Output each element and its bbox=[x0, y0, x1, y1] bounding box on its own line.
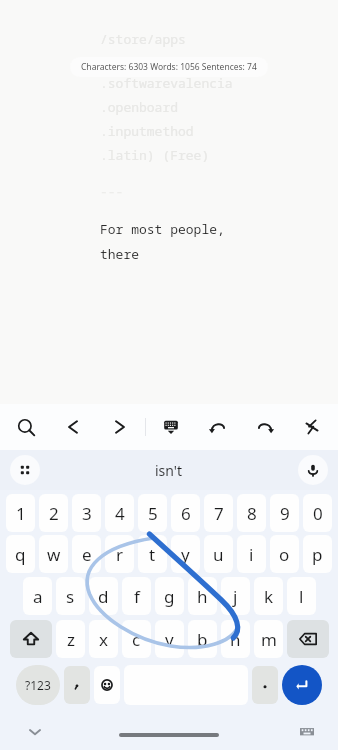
button[interactable]: 8 bbox=[237, 494, 266, 532]
button[interactable]: 1 bbox=[6, 494, 35, 532]
button[interactable]: w bbox=[39, 535, 68, 573]
staticText: r bbox=[116, 543, 124, 566]
staticText: .latin) (Free) bbox=[100, 146, 210, 164]
staticText: ?123 bbox=[25, 677, 51, 693]
staticText: a bbox=[33, 585, 43, 608]
button[interactable]: r bbox=[105, 535, 134, 573]
staticText: d bbox=[98, 585, 109, 608]
button[interactable]: Clipboard bbox=[10, 455, 40, 485]
button[interactable]: v bbox=[155, 620, 184, 658]
button[interactable]: m bbox=[254, 620, 283, 658]
staticText: o bbox=[279, 543, 290, 566]
staticText: i bbox=[249, 543, 254, 566]
button[interactable]: Enter bbox=[282, 665, 322, 705]
staticText: y bbox=[181, 543, 190, 566]
button[interactable]: k bbox=[254, 577, 283, 615]
staticText: 5 bbox=[148, 502, 158, 525]
button[interactable]: Keyboard settings bbox=[149, 408, 193, 446]
button[interactable]: o bbox=[270, 535, 299, 573]
button[interactable]: Shortcuts bbox=[290, 408, 334, 446]
button[interactable]: Redo bbox=[243, 408, 287, 446]
staticText: u bbox=[213, 543, 224, 566]
button[interactable]: a bbox=[23, 577, 52, 615]
button[interactable]: d bbox=[89, 577, 118, 615]
button[interactable]: l bbox=[287, 577, 316, 615]
button[interactable]: Voice input bbox=[298, 455, 328, 485]
button[interactable]: Switch keyboard bbox=[294, 719, 320, 745]
staticText: m bbox=[261, 628, 277, 651]
staticText: isn't bbox=[155, 461, 183, 480]
button[interactable]: c bbox=[122, 620, 151, 658]
button[interactable]: Backspace bbox=[287, 620, 329, 658]
button[interactable]: Next bbox=[98, 408, 142, 446]
staticText: 8 bbox=[247, 502, 257, 525]
button[interactable]: Shift bbox=[10, 620, 52, 658]
button[interactable]: 4 bbox=[105, 494, 134, 532]
button[interactable]: f bbox=[122, 577, 151, 615]
button[interactable]: 6 bbox=[171, 494, 200, 532]
staticText: w bbox=[47, 543, 61, 566]
button[interactable]: 3 bbox=[72, 494, 101, 532]
staticText: .openboard bbox=[100, 98, 179, 116]
staticText: 2 bbox=[49, 502, 59, 525]
button[interactable]: ?123 bbox=[16, 665, 60, 705]
staticText: /store/apps bbox=[100, 30, 186, 48]
staticText: s bbox=[66, 585, 75, 608]
staticText: 1 bbox=[16, 502, 26, 525]
button[interactable]: s bbox=[56, 577, 85, 615]
button[interactable]: y bbox=[171, 535, 200, 573]
button[interactable]: x bbox=[89, 620, 118, 658]
button[interactable]: 0 bbox=[303, 494, 332, 532]
button[interactable]: e bbox=[72, 535, 101, 573]
button[interactable]: Hide keyboard bbox=[22, 719, 48, 745]
button[interactable]: u bbox=[204, 535, 233, 573]
staticText: v bbox=[165, 628, 174, 651]
staticText: t bbox=[149, 543, 156, 566]
button[interactable]: Emoji bbox=[94, 666, 120, 704]
button[interactable]: Search bbox=[4, 408, 48, 446]
button[interactable]: q bbox=[6, 535, 35, 573]
button[interactable]: isn't bbox=[141, 457, 197, 484]
staticText: q bbox=[15, 543, 26, 566]
button[interactable]: 2 bbox=[39, 494, 68, 532]
staticText: c bbox=[132, 628, 141, 651]
staticText: 6 bbox=[181, 502, 191, 525]
button[interactable]: p bbox=[303, 535, 332, 573]
button[interactable]: 5 bbox=[138, 494, 167, 532]
button[interactable]: Comma bbox=[64, 666, 90, 704]
staticText: l bbox=[299, 585, 304, 608]
staticText: For most people, bbox=[100, 220, 225, 238]
button[interactable]: Previous bbox=[51, 408, 95, 446]
button[interactable]: i bbox=[237, 535, 266, 573]
staticText: f bbox=[134, 585, 140, 608]
staticText: e bbox=[82, 543, 92, 566]
staticText: x bbox=[99, 628, 108, 651]
staticText: there bbox=[100, 245, 140, 263]
button[interactable]: j bbox=[221, 577, 250, 615]
button[interactable]: 9 bbox=[270, 494, 299, 532]
button[interactable]: Period bbox=[252, 666, 278, 704]
staticText: 7 bbox=[214, 502, 224, 525]
staticText: b bbox=[197, 628, 208, 651]
staticText: .softwarevalencia bbox=[100, 74, 233, 92]
button[interactable]: t bbox=[138, 535, 167, 573]
button[interactable]: n bbox=[221, 620, 250, 658]
button[interactable]: Characters: 6303 Words: 1056 Sentences: … bbox=[70, 57, 268, 77]
staticText: 4 bbox=[115, 502, 125, 525]
staticText: .inputmethod bbox=[100, 122, 194, 140]
staticText: 0 bbox=[313, 502, 323, 525]
button[interactable]: g bbox=[155, 577, 184, 615]
staticText: g bbox=[164, 585, 175, 608]
button[interactable]: 7 bbox=[204, 494, 233, 532]
staticText: j bbox=[233, 585, 238, 608]
staticText: k bbox=[264, 585, 274, 608]
button[interactable]: b bbox=[188, 620, 217, 658]
staticText: z bbox=[67, 628, 75, 651]
button[interactable]: z bbox=[56, 620, 85, 658]
button[interactable]: h bbox=[188, 577, 217, 615]
button[interactable]: Undo bbox=[196, 408, 240, 446]
staticText: h bbox=[197, 585, 208, 608]
staticText: n bbox=[230, 628, 241, 651]
